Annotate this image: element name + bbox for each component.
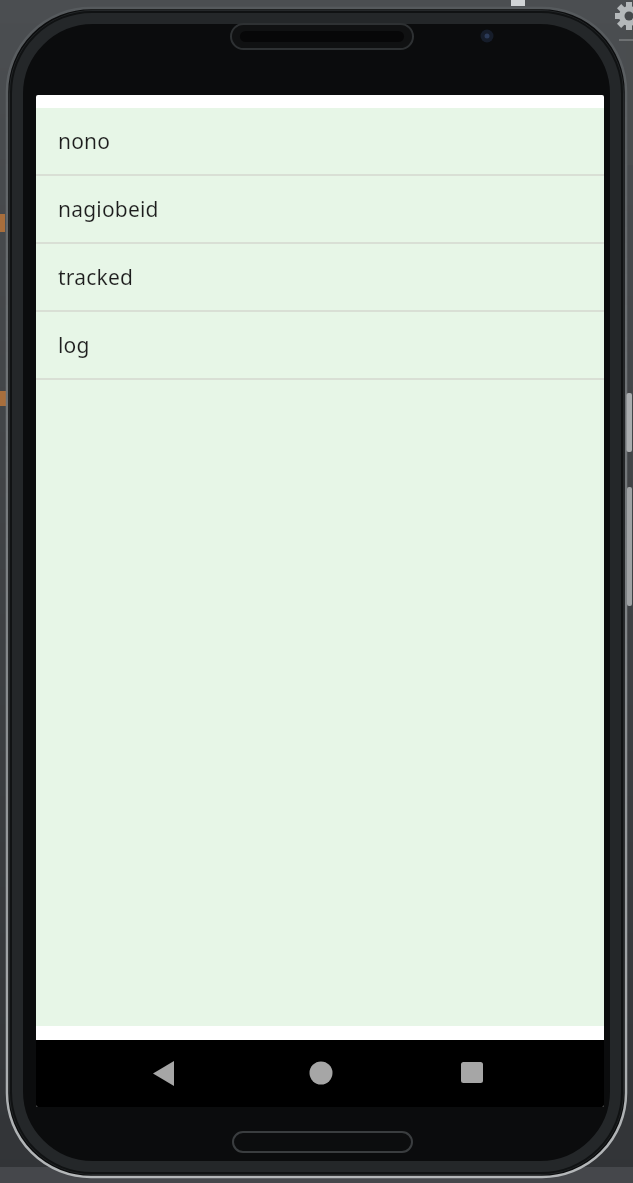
staticText: log	[58, 331, 90, 360]
button[interactable]: nono	[36, 108, 604, 174]
button[interactable]: tracked	[36, 244, 604, 310]
staticText: nono	[58, 127, 111, 156]
staticText: tracked	[58, 263, 134, 292]
button[interactable]	[139, 1050, 187, 1098]
staticText: nagiobeid	[58, 195, 159, 224]
button[interactable]: log	[36, 312, 604, 378]
button[interactable]	[448, 1050, 496, 1098]
button[interactable]	[297, 1050, 345, 1098]
button[interactable]: nagiobeid	[36, 176, 604, 242]
